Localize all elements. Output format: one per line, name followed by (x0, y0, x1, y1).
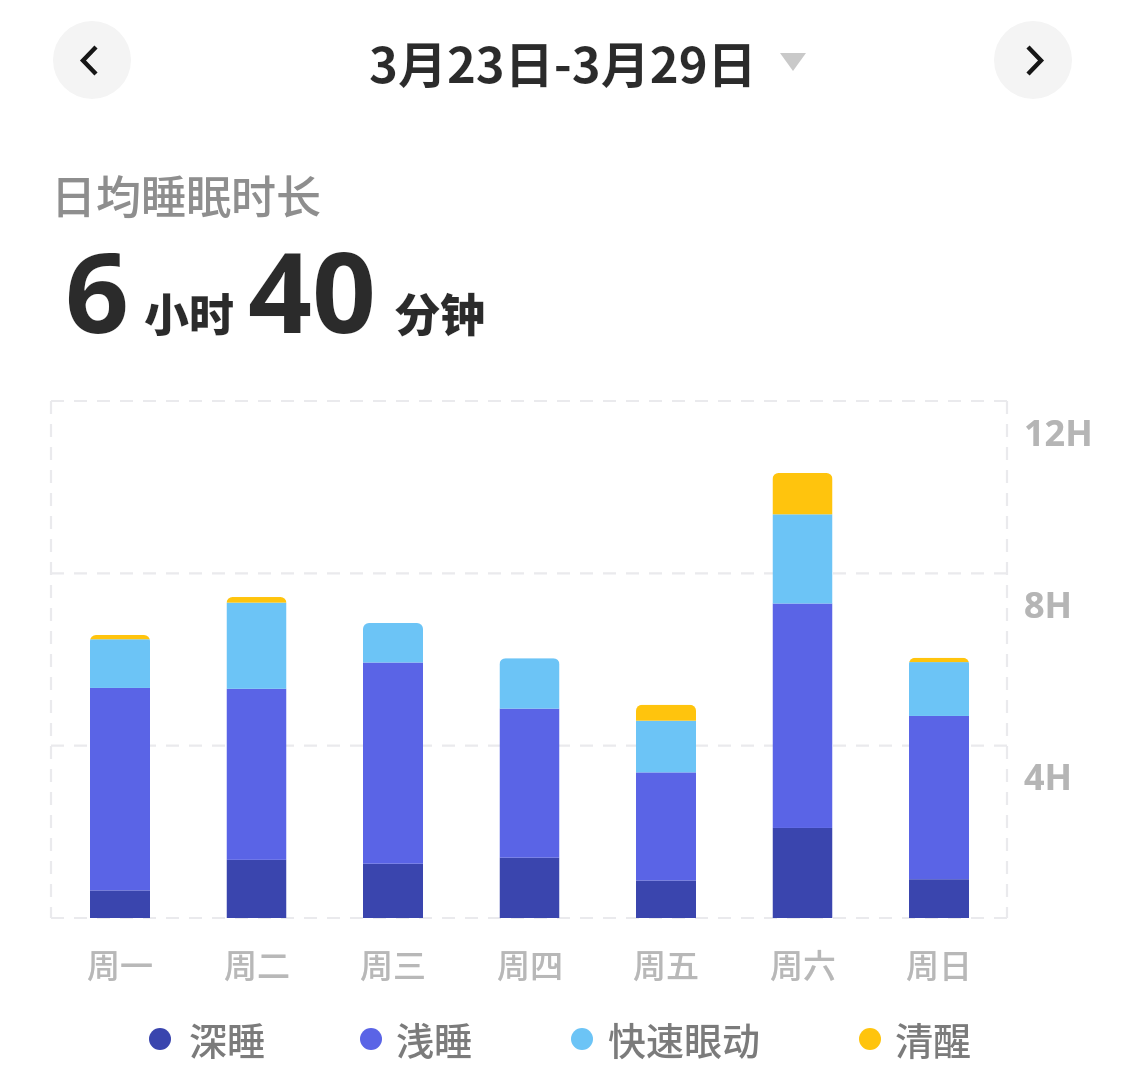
staticText: 4H (1024, 752, 1073, 801)
staticText: 清醒 (895, 1011, 972, 1066)
button[interactable]: 快速眼动 (571, 1011, 761, 1066)
button[interactable]: 深睡 (149, 1011, 266, 1066)
staticText: 周六 (743, 940, 863, 988)
staticText: 6 (65, 213, 130, 366)
staticText: 8H (1024, 580, 1073, 629)
staticText: 周四 (470, 940, 590, 988)
staticText: 周日 (879, 940, 999, 988)
staticText: 40 (248, 213, 377, 366)
staticText: 日均睡眠时长 (51, 162, 322, 227)
staticText: 12H (1024, 408, 1093, 457)
staticText: 深睡 (189, 1011, 266, 1066)
staticText: 分钟 (395, 280, 486, 345)
staticText: 快速眼动 (608, 1011, 761, 1066)
staticText: 周一 (60, 940, 180, 988)
button[interactable]: Previous week (53, 21, 131, 99)
button[interactable]: 清醒 (859, 1011, 972, 1066)
staticText: 浅睡 (396, 1011, 473, 1066)
staticText: 周三 (333, 940, 453, 988)
staticText: 周五 (606, 940, 726, 988)
button[interactable]: Next week (994, 21, 1072, 99)
button[interactable]: 浅睡 (360, 1011, 473, 1066)
staticText: 周二 (197, 940, 317, 988)
button[interactable]: 3月23日-3月29日 (362, 30, 812, 92)
staticText: 3月23日-3月29日 (369, 26, 757, 88)
staticText: 小时 (144, 280, 235, 345)
